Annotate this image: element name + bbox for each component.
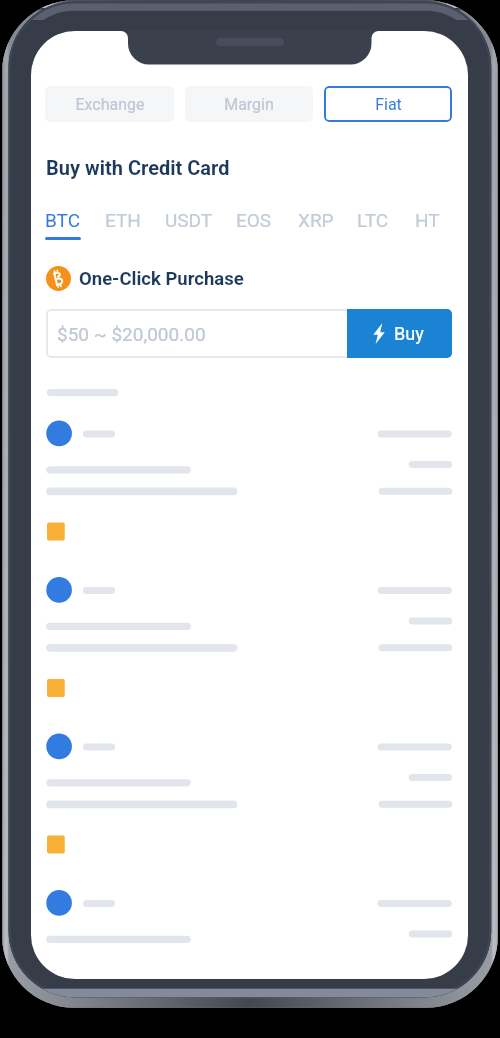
button[interactable]: ETH [91,209,155,245]
button[interactable]: BTC [31,209,95,245]
staticText: Buy with Credit Card [46,156,230,179]
button[interactable]: $50 ~ $20,000.00 [46,309,452,358]
button[interactable]: Exchange [45,86,174,122]
staticText: EOS [236,209,272,231]
button[interactable]: USDT [157,209,221,245]
button[interactable]: LTC [341,209,405,245]
button[interactable]: XRP [284,209,348,245]
staticText: USDT [165,209,213,231]
staticText: Exchange [75,95,145,114]
staticText: Buy [394,323,424,344]
staticText: Fiat [375,95,402,114]
staticText: One-Click Purchase [79,268,244,290]
staticText: BTC [45,209,81,231]
staticText: ETH [105,209,141,231]
button[interactable]: Margin [185,86,313,122]
button[interactable]: EOS [222,209,286,245]
staticText: HT [415,209,440,231]
staticText: XRP [298,209,334,231]
staticText: Margin [224,95,274,114]
button[interactable]: HT [395,209,459,245]
staticText: $50 ~ $20,000.00 [57,323,206,345]
button[interactable]: Buy [347,309,452,358]
button[interactable]: Fiat [324,86,452,122]
staticText: LTC [357,209,389,231]
